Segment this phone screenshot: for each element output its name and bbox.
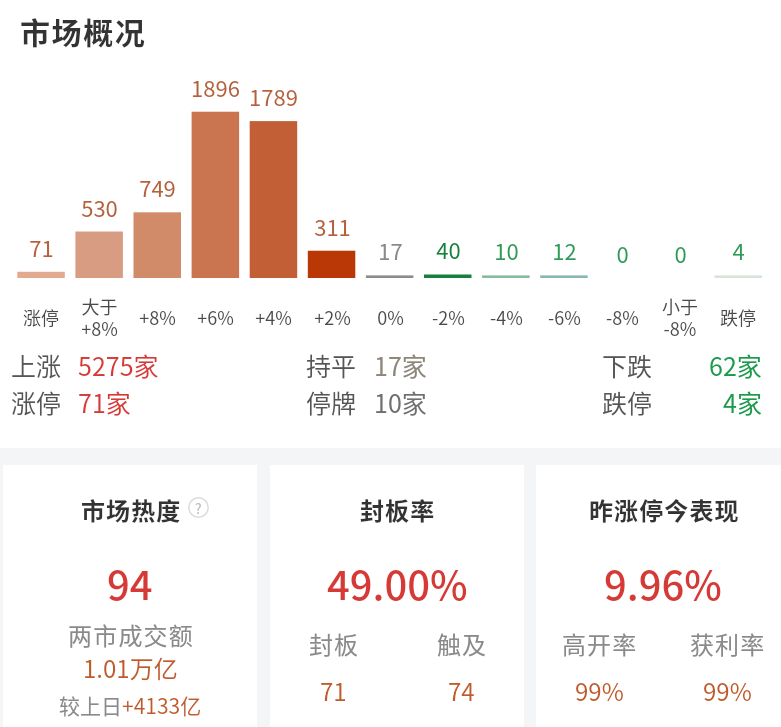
button[interactable]: +8% [117,293,197,341]
staticText: 530 [81,191,118,223]
staticText: 749 [139,171,176,203]
button[interactable]: 封板率 [270,465,524,727]
staticText: 昨涨停今表现 [589,492,740,527]
staticText: 17 [378,234,403,266]
staticText: 封板 [309,626,360,661]
staticText: 触及 [437,626,488,661]
staticText: 0 [616,237,629,269]
staticText: -2% [432,304,465,330]
button[interactable]: +4% [233,293,313,341]
button[interactable]: 说明 [188,497,209,518]
staticText: 71 [29,231,54,263]
staticText: 下跌 [602,347,653,382]
staticText: 9.96% [604,554,722,612]
button[interactable]: 涨停 [0,384,781,419]
staticText: 74 [448,673,475,708]
staticText: ? [195,498,202,518]
staticText: 4家 [723,384,762,419]
staticText: 市场热度 [81,492,182,527]
staticText: 12 [552,234,577,266]
staticText: 0% [377,304,404,330]
staticText: +4% [255,304,292,330]
staticText: 大于 +8% [81,293,118,341]
button[interactable]: +2% [292,293,372,341]
staticText: 两市成交额 [68,617,194,652]
staticText: 4 [732,234,745,266]
staticText: 1.01万亿 [83,650,178,685]
staticText: 17家 [374,347,427,382]
staticText: 62家 [709,347,762,382]
staticText: 上涨 [11,347,62,382]
staticText: 1789 [249,80,298,112]
staticText: +8% [139,304,176,330]
staticText: 市场概况 [20,9,147,52]
staticText: 封板率 [360,492,436,527]
button[interactable]: 大于 +8% [59,293,139,341]
staticText: 71 [320,673,347,708]
button[interactable]: 昨涨停今表现 [536,465,781,727]
staticText: -8% [606,304,639,330]
staticText: 40 [436,233,461,265]
staticText: 99% [575,673,624,708]
button[interactable]: 上涨 [0,347,781,382]
button[interactable]: -2% [408,293,488,341]
staticText: -6% [548,304,581,330]
staticText: +6% [197,304,234,330]
button[interactable]: 涨停 [1,293,81,341]
button[interactable]: 小于 -8% [640,293,720,341]
staticText: 10 [494,234,519,266]
staticText: 获利率 [690,626,766,661]
staticText: 71家 [78,384,131,419]
button[interactable]: 0% [350,293,430,341]
staticText: 高开率 [562,626,638,661]
staticText: 311 [314,210,351,242]
staticText: +2% [314,304,351,330]
staticText: 1896 [191,71,240,103]
staticText: 较上日 [59,690,122,720]
staticText: 涨停 [11,384,62,419]
staticText: 小于 -8% [662,293,698,341]
staticText: 0 [674,237,687,269]
staticText: 跌停 [720,304,756,330]
staticText: +4133亿 [122,690,202,720]
staticText: 10家 [374,384,427,419]
staticText: 停牌 [306,384,357,419]
staticText: 99% [703,673,752,708]
button[interactable]: -8% [582,293,662,341]
button[interactable]: -6% [524,293,604,341]
button[interactable]: +6% [175,293,255,341]
staticText: 5275家 [78,347,159,382]
staticText: 持平 [306,347,357,382]
button[interactable]: 跌停 [698,293,778,341]
button[interactable]: -4% [466,293,546,341]
staticText: 跌停 [602,384,653,419]
staticText: -4% [490,304,523,330]
staticText: 49.00% [327,554,468,612]
staticText: 94 [107,554,153,612]
staticText: 涨停 [23,304,59,330]
button[interactable]: 市场热度 [3,465,257,727]
